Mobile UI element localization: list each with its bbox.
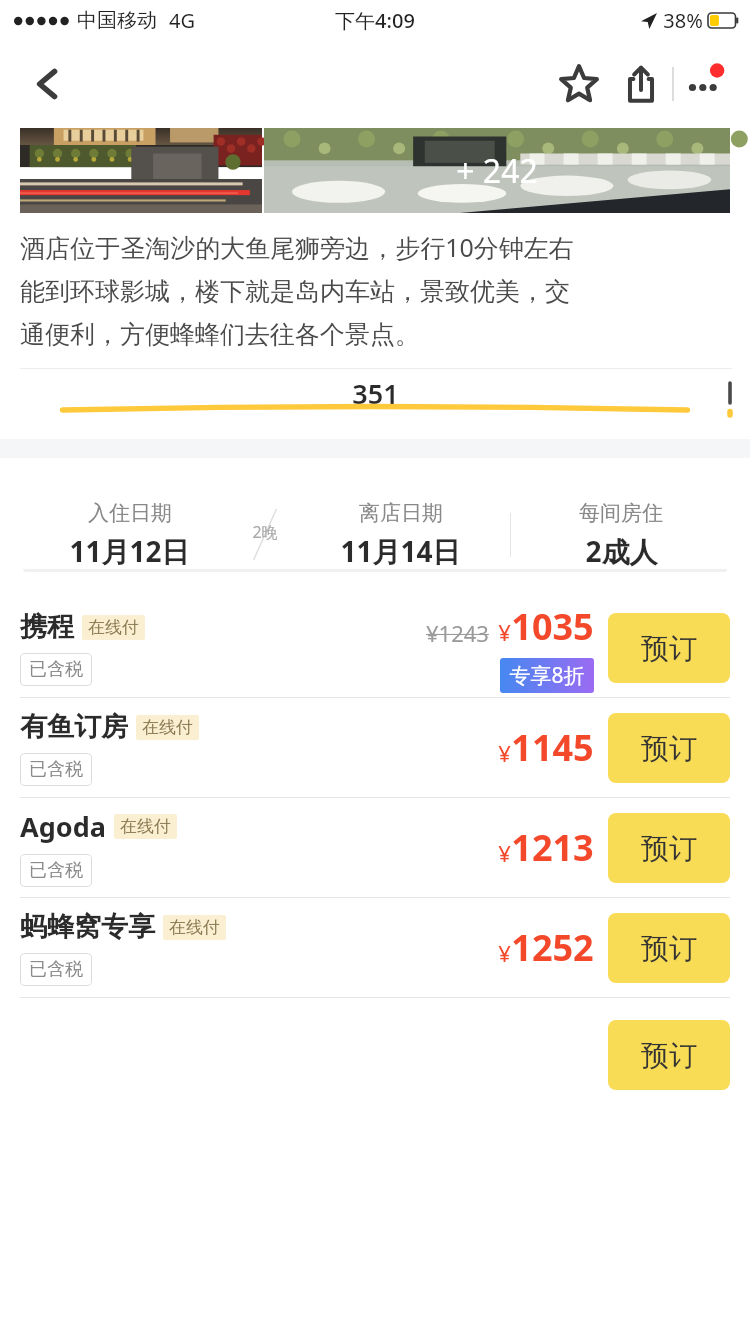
button[interactable] xyxy=(20,128,262,213)
button[interactable]: 预订 xyxy=(608,1020,730,1090)
staticText: 11月12日 xyxy=(69,532,190,569)
button[interactable]: 携程 xyxy=(0,598,750,698)
button[interactable]: 预订 xyxy=(608,813,730,883)
staticText: 已含税 xyxy=(29,758,83,781)
staticText: 中国移动 xyxy=(77,8,157,33)
button[interactable]: 蚂蜂窝专享 xyxy=(0,898,750,998)
staticText: 预订 xyxy=(641,631,697,666)
staticText: 能到环球影城，楼下就是岛内车站，景致优美，交 xyxy=(20,276,570,307)
staticText: 4G xyxy=(169,7,195,34)
staticText: 2晚 xyxy=(252,521,278,543)
staticText: 在线付 xyxy=(120,816,171,837)
staticText: + 242 xyxy=(456,149,538,193)
staticText: 预订 xyxy=(641,731,697,766)
staticText: 2成人 xyxy=(585,532,658,569)
staticText: 38% xyxy=(663,7,703,34)
staticText: 专享8折 xyxy=(509,661,585,690)
staticText: ¥1243 xyxy=(426,618,489,648)
staticText: ¥ xyxy=(498,738,511,768)
button[interactable]: 入住日期 xyxy=(20,500,730,569)
button[interactable]: 预订 xyxy=(608,913,730,983)
staticText: 下午4:09 xyxy=(335,7,415,34)
button[interactable]: Back xyxy=(20,56,76,112)
staticText: 预订 xyxy=(641,831,697,866)
staticText: 已含税 xyxy=(29,859,83,882)
staticText: 通便利，方便蜂蜂们去往各个景点。 xyxy=(20,319,420,350)
button[interactable]: Share xyxy=(610,53,672,115)
staticText: 携程 xyxy=(20,610,74,644)
staticText: 在线付 xyxy=(88,617,139,638)
button[interactable]: More options xyxy=(674,53,736,115)
button[interactable]: 351 xyxy=(0,369,750,417)
staticText: 351 xyxy=(352,375,399,412)
staticText: 1252 xyxy=(511,923,594,972)
staticText: 1145 xyxy=(511,723,594,772)
staticText: Agoda xyxy=(20,808,106,845)
staticText: 已含税 xyxy=(29,958,83,981)
staticText: ¥ xyxy=(498,617,511,647)
staticText: 预订 xyxy=(641,931,697,966)
staticText: 在线付 xyxy=(169,917,220,938)
staticText: 有鱼订房 xyxy=(20,710,128,744)
staticText: 入住日期 xyxy=(88,500,172,526)
staticText: 1213 xyxy=(511,823,594,872)
staticText: 预订 xyxy=(641,1038,697,1073)
staticText: 酒店位于圣淘沙的大鱼尾狮旁边，步行10分钟左右 xyxy=(20,230,574,264)
staticText: ¥ xyxy=(498,838,511,868)
staticText: 离店日期 xyxy=(359,500,443,526)
button[interactable]: 预订 xyxy=(608,613,730,683)
button[interactable]: 预订 xyxy=(608,713,730,783)
staticText: 蚂蜂窝专享 xyxy=(20,910,155,944)
button[interactable]: + 242 xyxy=(264,128,730,213)
staticText: 每间房住 xyxy=(579,500,663,526)
button[interactable]: Favorite xyxy=(548,53,610,115)
staticText: 在线付 xyxy=(142,717,193,738)
staticText: 11月14日 xyxy=(340,532,461,569)
button[interactable]: 有鱼订房 xyxy=(0,698,750,798)
button[interactable]: Agoda xyxy=(0,798,750,898)
staticText: 已含税 xyxy=(29,658,83,681)
staticText: 1035 xyxy=(511,602,594,651)
staticText: ¥ xyxy=(498,938,511,968)
